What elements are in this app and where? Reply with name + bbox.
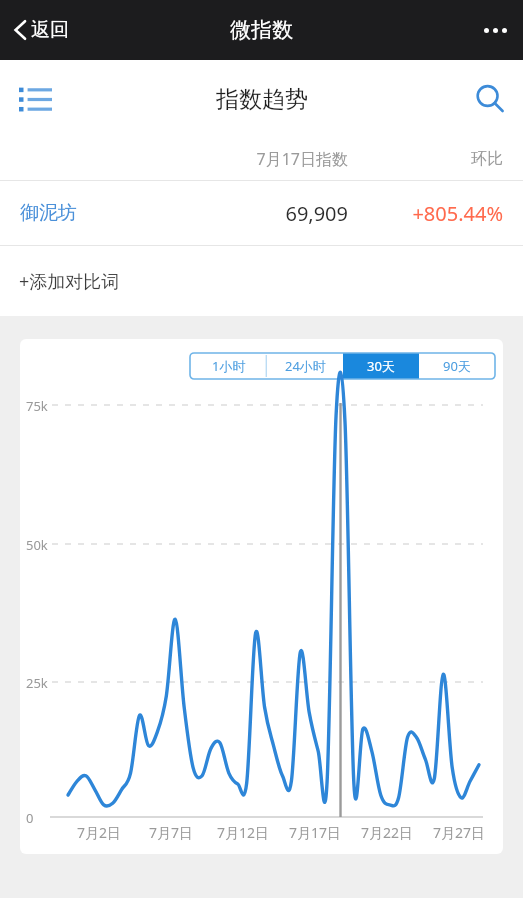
button[interactable]: More options bbox=[468, 14, 523, 47]
staticText: 环比 bbox=[368, 149, 503, 169]
button[interactable]: 24小时 bbox=[267, 353, 343, 379]
staticText: 7月17日指数 bbox=[208, 148, 348, 170]
button[interactable]: +添加对比词 bbox=[0, 246, 523, 316]
button[interactable]: Search bbox=[457, 68, 523, 130]
staticText: 7月12日 bbox=[217, 823, 270, 842]
staticText: 返回 bbox=[31, 18, 69, 42]
button[interactable]: 御泥坊 bbox=[0, 181, 523, 245]
staticText: 微指数 bbox=[230, 17, 293, 43]
button[interactable]: 1小时 bbox=[190, 353, 267, 379]
button[interactable]: 90天 bbox=[419, 353, 495, 379]
staticText: +805.44% bbox=[368, 200, 503, 227]
staticText: 75k bbox=[26, 397, 48, 415]
staticText: 7月27日 bbox=[433, 823, 486, 842]
staticText: 指数趋势 bbox=[216, 85, 308, 114]
staticText: 25k bbox=[26, 674, 48, 692]
staticText: 1小时 bbox=[212, 357, 246, 375]
staticText: 7月17日 bbox=[289, 823, 342, 842]
staticText: 7月22日 bbox=[361, 823, 414, 842]
staticText: 69,909 bbox=[208, 200, 348, 227]
button[interactable]: 30天 bbox=[343, 353, 419, 379]
staticText: +添加对比词 bbox=[19, 269, 120, 294]
staticText: 24小时 bbox=[285, 357, 326, 375]
button[interactable]: 返回 bbox=[0, 10, 83, 50]
staticText: 30天 bbox=[367, 357, 395, 375]
staticText: 0 bbox=[26, 809, 34, 827]
staticText: 50k bbox=[26, 536, 48, 554]
button[interactable]: List bbox=[0, 71, 71, 128]
staticText: 90天 bbox=[443, 357, 471, 375]
staticText: 御泥坊 bbox=[20, 201, 77, 225]
staticText: 7月2日 bbox=[77, 823, 122, 842]
staticText: 7月7日 bbox=[149, 823, 194, 842]
